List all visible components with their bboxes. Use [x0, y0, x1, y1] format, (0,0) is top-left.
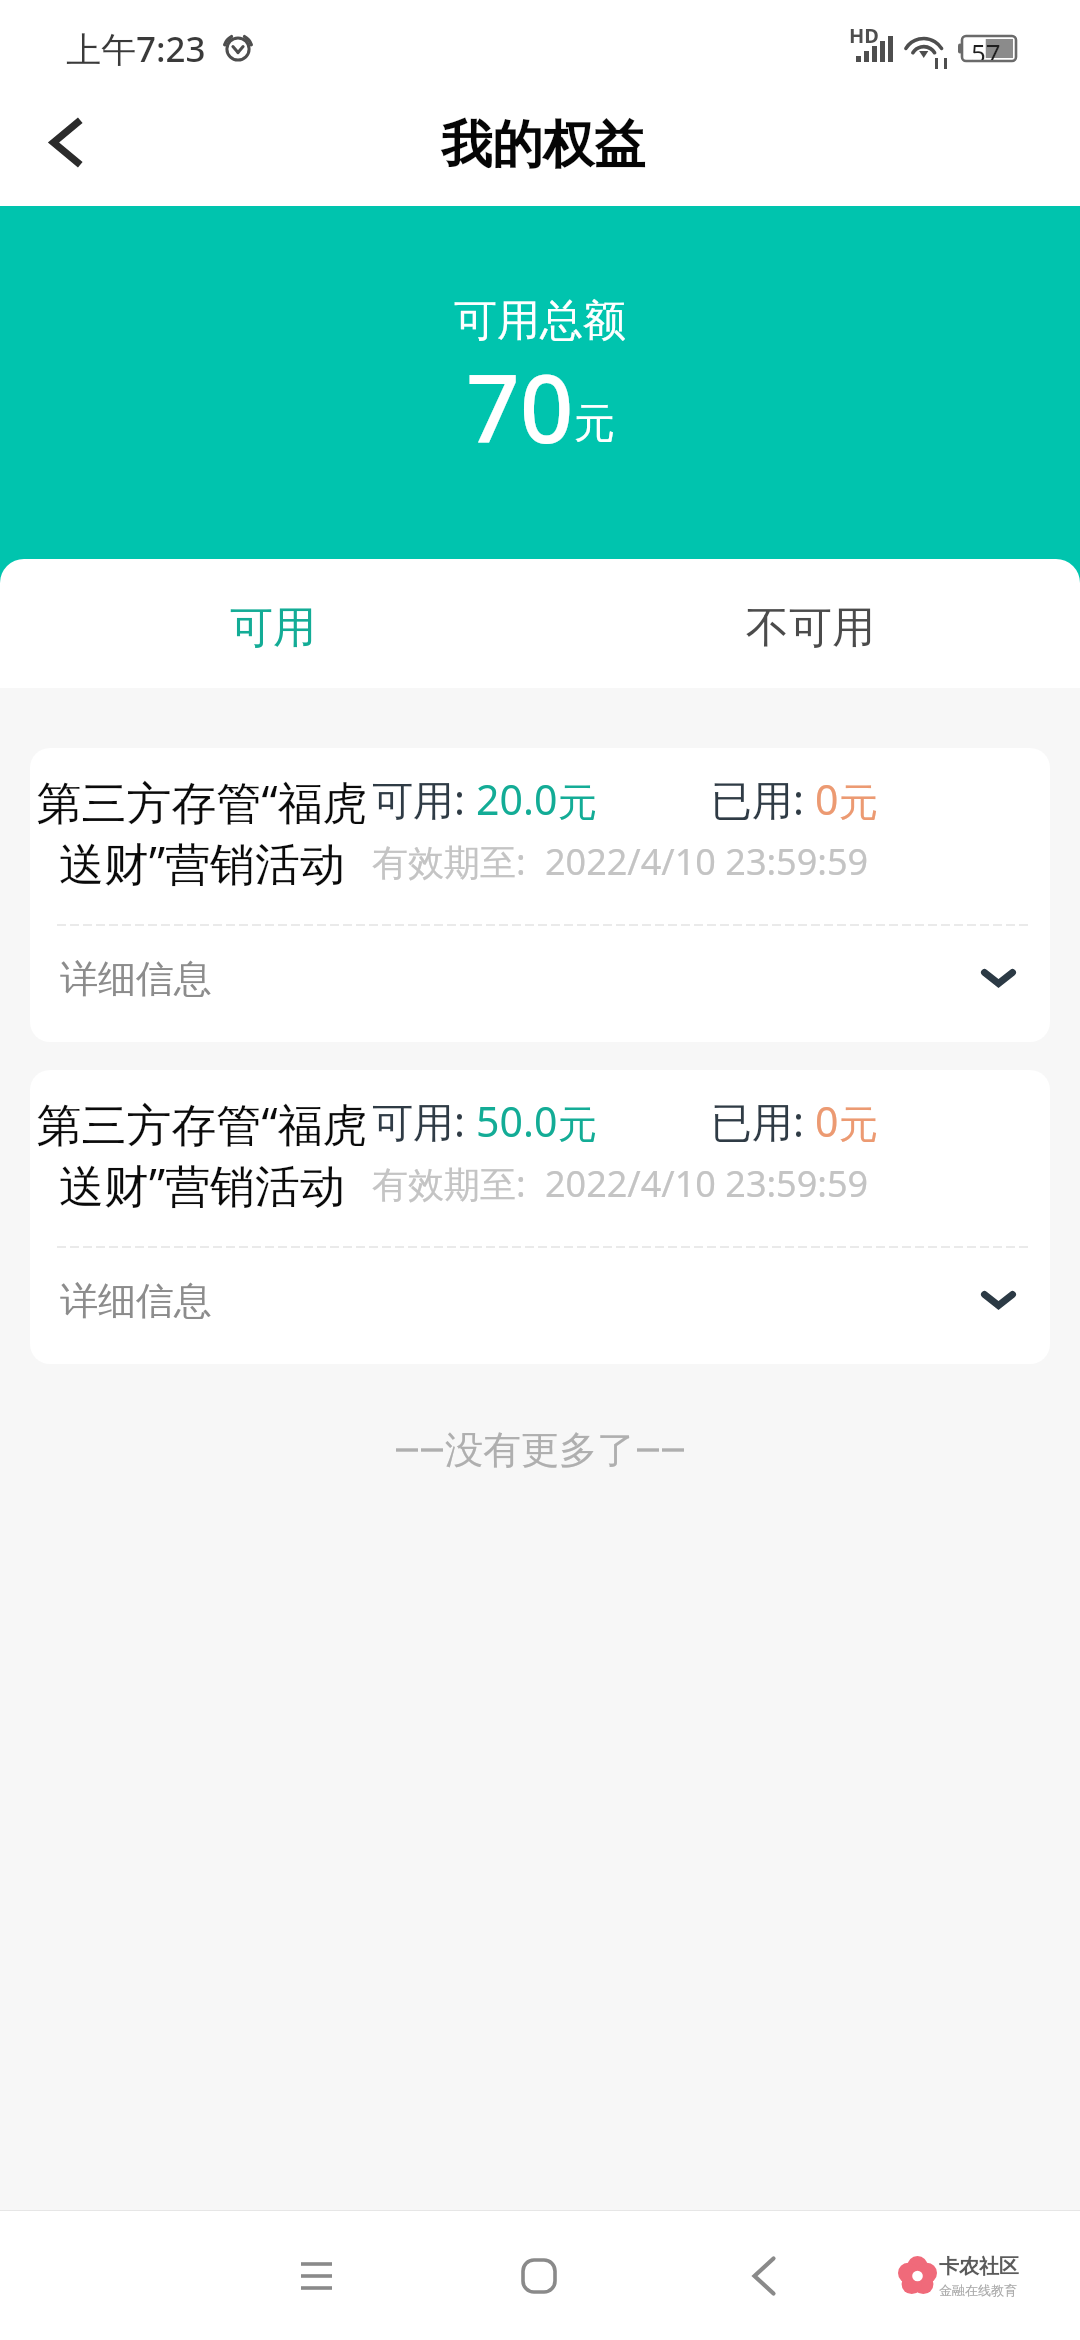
- staticText: 上午7:23: [66, 25, 206, 73]
- staticText: 57: [971, 35, 1001, 60]
- staticText: 卡农社区: [939, 2254, 1019, 2279]
- staticText: 元: [839, 778, 878, 827]
- staticText: 2022/4/10 23:59:59: [545, 1159, 869, 1208]
- staticText: 可用:: [372, 1093, 476, 1149]
- button[interactable]: Back: [0, 96, 128, 206]
- staticText: 详细信息: [60, 955, 212, 1003]
- staticText: 2022/4/10 23:59:59: [545, 837, 869, 886]
- staticText: 元: [574, 398, 615, 450]
- button[interactable]: 第三方存管“福虎 送财”营销活动: [30, 1070, 1050, 1364]
- staticText: 70: [466, 343, 574, 471]
- button[interactable]: 可用: [0, 559, 540, 688]
- staticText: 0: [815, 1093, 839, 1149]
- staticText: 元: [558, 778, 597, 827]
- staticText: 第三方存管“福虎 送财”营销活动: [36, 1093, 368, 1215]
- staticText: 没有更多了: [445, 1426, 635, 1474]
- staticText: 第三方存管“福虎 送财”营销活动: [36, 771, 368, 893]
- staticText: 元: [839, 1100, 878, 1149]
- staticText: 有效期至:: [372, 837, 545, 886]
- staticText: 已用:: [711, 771, 815, 827]
- staticText: 我的权益: [441, 113, 645, 177]
- button[interactable]: Recent apps: [236, 2211, 396, 2340]
- button[interactable]: 第三方存管“福虎 送财”营销活动: [30, 748, 1050, 1042]
- staticText: 可用: [230, 601, 316, 655]
- staticText: 已用:: [711, 1093, 815, 1149]
- staticText: 有效期至:: [372, 1159, 545, 1208]
- button[interactable]: 不可用: [540, 559, 1080, 688]
- staticText: 详细信息: [60, 1277, 212, 1325]
- staticText: HD: [849, 22, 879, 49]
- staticText: 金融在线教育: [939, 2282, 1017, 2298]
- staticText: 可用总额: [454, 294, 626, 348]
- staticText: 20.0: [476, 771, 558, 827]
- staticText: 可用:: [372, 771, 476, 827]
- button[interactable]: Back: [684, 2211, 844, 2340]
- button[interactable]: Home: [459, 2211, 619, 2340]
- staticText: 50.0: [476, 1093, 558, 1149]
- staticText: 元: [558, 1100, 597, 1149]
- staticText: 0: [815, 771, 839, 827]
- staticText: 不可用: [746, 601, 875, 655]
